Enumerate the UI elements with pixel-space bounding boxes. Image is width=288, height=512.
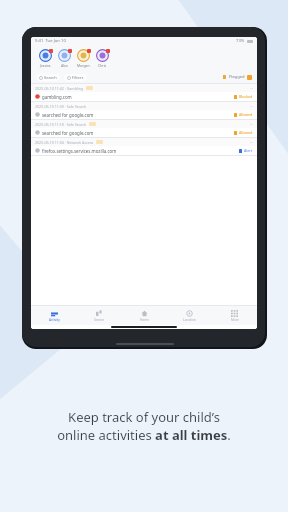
staticText: Morgan — [77, 63, 90, 68]
staticText: firefox.settings.services.mozilla.com — [42, 148, 117, 154]
staticText: Filters — [72, 75, 84, 80]
staticText: Blocked — [239, 94, 253, 99]
button[interactable]: Morgan — [77, 49, 90, 68]
button[interactable]: Filters — [64, 74, 87, 81]
staticText: ··· — [250, 104, 253, 109]
staticText: ··· — [250, 140, 253, 145]
staticText: Flagged — [229, 74, 245, 80]
staticText: Chris — [98, 63, 107, 68]
button[interactable]: 2025-06-10 11:18 · Safe Search — [31, 120, 257, 138]
staticText: 2025-06-10 11:30 · Safe Search — [35, 104, 87, 109]
staticText: ··· — [250, 86, 253, 91]
staticText: Alert — [244, 148, 253, 153]
staticText: searched for google.com — [42, 130, 94, 136]
staticText: searched for google.com — [42, 112, 94, 118]
button[interactable]: Alex — [58, 49, 71, 68]
button[interactable]: 2025-06-10 11:04 · Network Access — [31, 138, 257, 156]
staticText: 2025-06-10 11:18 · Safe Search — [35, 122, 87, 127]
staticText: Keep track of your child’s online activi… — [20, 408, 268, 444]
button[interactable]: 2025-06-10 11:30 · Safe Search — [31, 102, 257, 120]
button[interactable]: Activity — [31, 306, 77, 325]
button[interactable]: Jessica — [39, 49, 52, 68]
staticText: Jessica — [40, 63, 51, 68]
staticText: Search — [44, 75, 57, 80]
staticText: Allowed — [239, 130, 253, 135]
button[interactable]: Screen — [77, 306, 122, 325]
staticText: gambling.com — [42, 94, 72, 100]
button[interactable]: Chris — [96, 49, 109, 68]
button[interactable]: Location — [167, 306, 212, 325]
button[interactable]: Flagged — [223, 74, 252, 80]
staticText: 2025-06-10 11:04 · Network Access — [35, 140, 94, 145]
button[interactable]: 2025-06-10 11:42 · Gambling — [31, 84, 257, 102]
button[interactable]: Home — [122, 306, 167, 325]
staticText: 73% — [236, 38, 245, 44]
staticText: More — [231, 318, 239, 322]
staticText: Screen — [94, 318, 105, 322]
staticText: 9:41 Tue Jun 10 — [35, 38, 66, 44]
button[interactable]: Search — [36, 74, 60, 81]
staticText: Activity — [49, 318, 60, 322]
staticText: Home — [140, 318, 150, 322]
button[interactable]: More — [212, 306, 257, 325]
staticText: Alex — [61, 63, 68, 68]
staticText: 2025-06-10 11:42 · Gambling — [35, 86, 84, 91]
staticText: Location — [183, 318, 196, 322]
staticText: ··· — [250, 122, 253, 127]
staticText: Allowed — [239, 112, 253, 117]
